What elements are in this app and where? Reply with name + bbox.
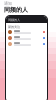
staticText: 同频的人: [4, 6, 28, 14]
staticText: 通知: [4, 1, 12, 6]
button[interactable]: [6, 29, 47, 35]
staticText: 同频的人: [8, 18, 20, 22]
staticText: 新的关注: [8, 25, 20, 29]
button[interactable]: 同频的人: [6, 16, 47, 23]
button[interactable]: [6, 41, 47, 47]
button[interactable]: [6, 35, 47, 41]
